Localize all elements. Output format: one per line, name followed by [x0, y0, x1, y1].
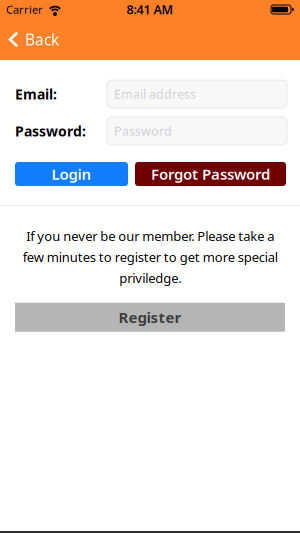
- button[interactable]: Back: [0, 29, 59, 50]
- staticText: Password: [114, 122, 172, 139]
- staticText: Forgot Password: [151, 164, 270, 184]
- staticText: Email address: [114, 85, 196, 102]
- button[interactable]: Forgot Password: [135, 162, 286, 186]
- staticText: Carrier: [6, 2, 43, 17]
- staticText: Back: [25, 29, 59, 50]
- staticText: Password:: [15, 121, 86, 141]
- button[interactable]: Login: [15, 162, 128, 186]
- staticText: Register: [118, 307, 181, 327]
- staticText: Email:: [15, 84, 57, 104]
- staticText: Login: [51, 164, 91, 184]
- button[interactable]: Register: [15, 303, 285, 332]
- staticText: 8:41 AM: [126, 1, 173, 18]
- staticText: If you never be our member. Please take …: [22, 227, 277, 287]
